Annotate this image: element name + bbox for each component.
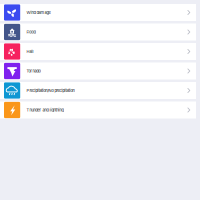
button[interactable]: Tornado	[0, 62, 196, 79]
button[interactable]: Wind damage	[0, 4, 196, 21]
button[interactable]: Precipitation/No precipitation	[0, 82, 196, 99]
staticText: Precipitation/No precipitation	[26, 88, 74, 93]
staticText: Tornado	[26, 69, 40, 73]
staticText: Hail	[26, 49, 33, 54]
button[interactable]: Thunder and lightning	[0, 101, 196, 118]
staticText: Thunder and lightning	[26, 108, 63, 112]
staticText: Flood	[26, 30, 35, 34]
button[interactable]: Flood	[0, 23, 196, 40]
button[interactable]: Hail	[0, 43, 196, 60]
staticText: Wind damage	[26, 10, 50, 15]
